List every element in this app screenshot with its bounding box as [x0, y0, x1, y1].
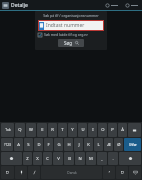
staticText: T: [61, 127, 64, 133]
button[interactable]: U: [78, 123, 87, 137]
staticText: G: [57, 142, 61, 148]
staticText: Detalje: [11, 2, 28, 9]
button[interactable]: Indtast nummer: [38, 20, 104, 31]
button[interactable]: L: [94, 138, 103, 151]
button[interactable]: E: [37, 123, 47, 137]
staticText: B: [68, 156, 71, 162]
staticText: O: [101, 127, 105, 133]
staticText: V: [57, 156, 60, 162]
staticText: Ø: [117, 142, 121, 148]
staticText: ,: [101, 156, 103, 162]
staticText: Q: [18, 127, 22, 133]
button[interactable]: ?123: [1, 138, 13, 151]
button[interactable]: Æ: [104, 138, 113, 151]
button[interactable]: W: [26, 123, 36, 137]
button[interactable]: O: [98, 123, 107, 137]
staticText: L: [97, 142, 100, 148]
staticText: Utfør: [129, 143, 137, 147]
staticText: Å: [121, 127, 124, 133]
button[interactable]: App icon: [2, 2, 9, 9]
staticText: Dansk: [67, 171, 77, 175]
button[interactable]: X: [33, 152, 42, 165]
button[interactable]: Y: [68, 123, 77, 137]
staticText: K: [87, 142, 90, 148]
staticText: H: [67, 142, 71, 148]
button[interactable]: Apostrophe: [103, 166, 115, 179]
button[interactable]: Hide keyboard: [129, 166, 141, 179]
button[interactable]: ,: [97, 152, 107, 165]
button[interactable]: Shift: [1, 152, 22, 165]
button[interactable]: Ø: [114, 138, 123, 151]
button[interactable]: Å: [118, 123, 127, 137]
button[interactable]: Dansk: [41, 166, 102, 179]
button[interactable]: .: [108, 152, 118, 165]
staticText: N: [78, 156, 82, 162]
staticText: Tab: [5, 128, 11, 132]
staticText: Æ: [107, 142, 111, 148]
button[interactable]: B: [64, 152, 74, 165]
button[interactable]: J: [74, 138, 83, 151]
staticText: A: [17, 142, 20, 148]
button[interactable]: Q: [15, 123, 25, 137]
button[interactable]: G: [54, 138, 63, 151]
staticText: D: [37, 142, 41, 148]
button[interactable]: S: [24, 138, 33, 151]
button[interactable]: Søk med både tlf og org.nr: [38, 32, 104, 37]
staticText: R: [51, 127, 54, 133]
staticText: S: [27, 142, 30, 148]
button[interactable]: Shift right: [119, 152, 141, 165]
button[interactable]: Emoji: [116, 166, 128, 179]
button[interactable]: P: [108, 123, 117, 137]
button[interactable]: Tab: [1, 123, 14, 137]
staticText: U: [81, 127, 85, 133]
button[interactable]: M: [86, 152, 96, 165]
staticText: Søk på tlf / organisasjonsnummer: [43, 13, 99, 18]
staticText: C: [46, 156, 49, 162]
button[interactable]: Voice input: [15, 166, 27, 179]
staticText: E: [41, 127, 44, 133]
staticText: ?123: [4, 143, 11, 147]
staticText: P: [111, 127, 114, 133]
button[interactable]: Backspace: [128, 123, 141, 137]
button[interactable]: V: [53, 152, 63, 165]
button[interactable]: T: [58, 123, 67, 137]
staticText: Indtast nummer: [46, 22, 85, 29]
button[interactable]: Search: [125, 3, 138, 8]
button[interactable]: C: [43, 152, 52, 165]
button[interactable]: Søg: [58, 39, 84, 47]
staticText: W: [29, 127, 33, 133]
staticText: F: [47, 142, 50, 148]
button[interactable]: R: [48, 123, 57, 137]
button[interactable]: A: [14, 138, 23, 151]
button[interactable]: Refresh: [105, 3, 118, 8]
staticText: M: [89, 156, 93, 162]
staticText: J: [78, 142, 80, 148]
button[interactable]: I: [88, 123, 97, 137]
button[interactable]: F: [44, 138, 53, 151]
staticText: I: [92, 127, 94, 133]
button[interactable]: N: [75, 152, 85, 165]
staticText: Søg: [64, 40, 72, 46]
button[interactable]: D: [34, 138, 43, 151]
staticText: Y: [71, 127, 74, 133]
staticText: Søk med både tlf og org.nr: [44, 32, 88, 37]
staticText: X: [36, 156, 39, 162]
button[interactable]: Z: [23, 152, 32, 165]
staticText: Z: [26, 156, 29, 162]
button[interactable]: K: [84, 138, 93, 151]
button[interactable]: Symbols: [1, 166, 14, 179]
staticText: .: [112, 156, 114, 162]
button[interactable]: Utfør: [124, 138, 141, 151]
button[interactable]: Settings: [28, 166, 40, 179]
button[interactable]: H: [64, 138, 73, 151]
